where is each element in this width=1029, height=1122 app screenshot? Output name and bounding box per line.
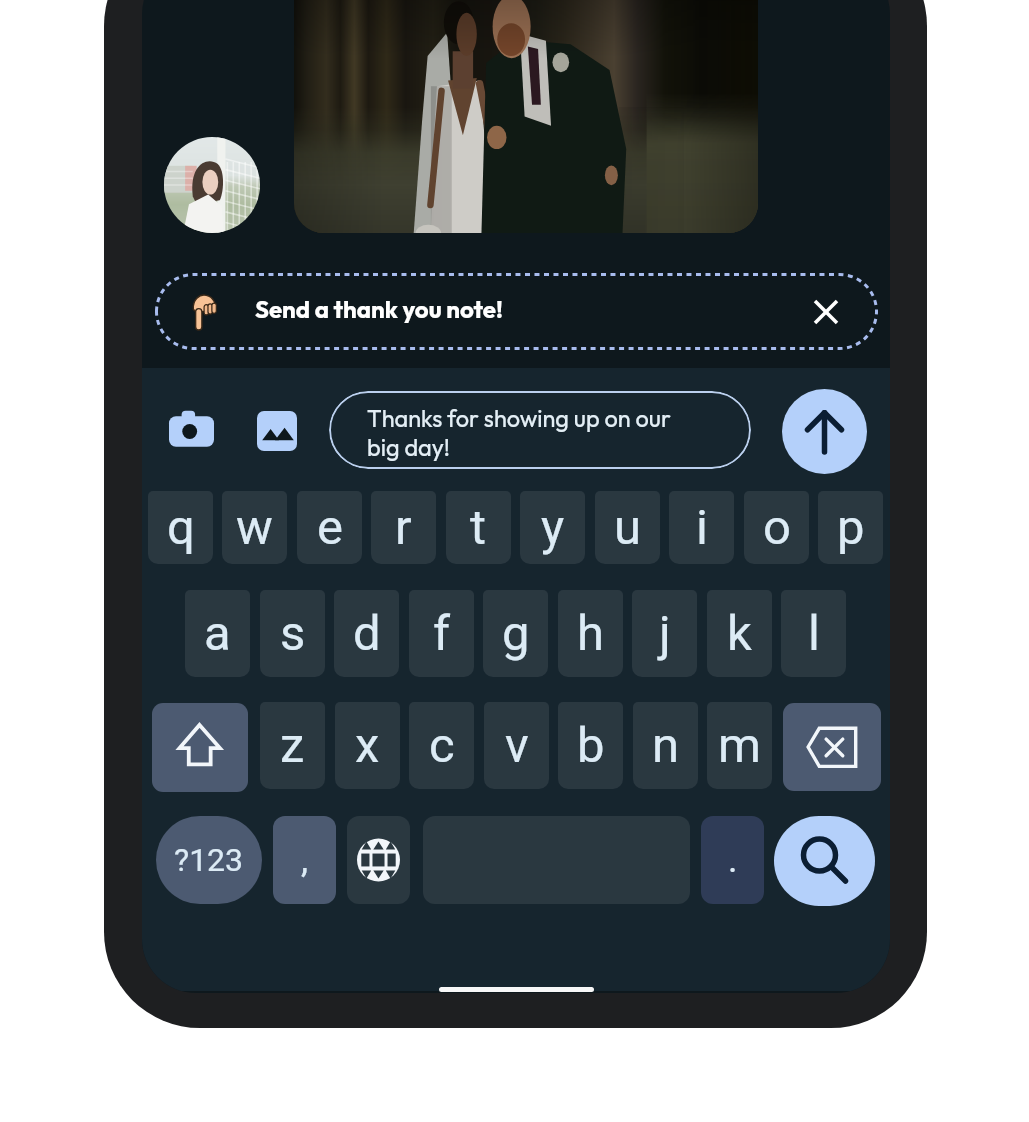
- staticText: p: [837, 499, 865, 556]
- button[interactable]: .: [701, 816, 764, 904]
- button[interactable]: p: [818, 491, 883, 564]
- staticText: k: [727, 605, 752, 662]
- button[interactable]: q: [148, 491, 213, 564]
- staticText: s: [280, 605, 306, 662]
- staticText: o: [763, 499, 791, 556]
- staticText: j: [659, 605, 671, 662]
- button[interactable]: s: [260, 590, 325, 677]
- staticText: e: [317, 499, 343, 556]
- button[interactable]: ?123: [156, 816, 262, 904]
- staticText: v: [505, 717, 529, 774]
- staticText: ,: [301, 839, 309, 881]
- staticText: g: [502, 605, 530, 662]
- staticText: b: [577, 717, 605, 774]
- button[interactable]: t: [446, 491, 511, 564]
- staticText: u: [614, 499, 642, 556]
- staticText: z: [280, 717, 305, 774]
- staticText: ?123: [174, 841, 244, 879]
- staticText: w: [236, 499, 273, 556]
- button[interactable]: v: [484, 702, 549, 789]
- button[interactable]: m: [707, 702, 772, 789]
- button[interactable]: g: [483, 590, 548, 677]
- button[interactable]: Camera: [169, 409, 214, 454]
- staticText: f: [433, 605, 451, 662]
- button[interactable]: Language: [347, 816, 410, 904]
- button[interactable]: l: [781, 590, 846, 677]
- button[interactable]: x: [335, 702, 400, 789]
- button[interactable]: e: [297, 491, 362, 564]
- staticText: Send a thank you note!: [255, 294, 503, 324]
- button[interactable]: Shift: [152, 703, 248, 792]
- staticText: a: [204, 605, 231, 662]
- button[interactable]: Send: [782, 389, 867, 474]
- button[interactable]: a: [185, 590, 250, 677]
- button[interactable]: k: [707, 590, 772, 677]
- staticText: y: [541, 499, 565, 556]
- button[interactable]: n: [633, 702, 698, 789]
- button[interactable]: r: [371, 491, 436, 564]
- button[interactable]: i: [669, 491, 734, 564]
- button[interactable]: Backspace: [783, 703, 881, 791]
- button[interactable]: u: [595, 491, 660, 564]
- button[interactable]: Dismiss: [808, 294, 844, 330]
- button[interactable]: f: [409, 590, 474, 677]
- staticText: r: [395, 499, 412, 556]
- staticText: c: [429, 717, 455, 774]
- staticText: d: [353, 605, 381, 662]
- staticText: t: [470, 499, 487, 556]
- button[interactable]: Search: [774, 816, 875, 906]
- button[interactable]: w: [222, 491, 287, 564]
- staticText: n: [652, 717, 680, 774]
- button[interactable]: Thanks for showing up on our big day!: [329, 391, 751, 469]
- staticText: h: [577, 605, 604, 662]
- staticText: l: [808, 605, 820, 662]
- button[interactable]: z: [260, 702, 325, 789]
- button[interactable]: d: [334, 590, 399, 677]
- button[interactable]: Gallery: [257, 411, 297, 451]
- staticText: x: [355, 717, 380, 774]
- button[interactable]: ,: [273, 816, 336, 904]
- button[interactable]: c: [409, 702, 474, 789]
- button[interactable]: b: [558, 702, 623, 789]
- button[interactable]: j: [632, 590, 697, 677]
- button[interactable]: y: [520, 491, 585, 564]
- staticText: i: [696, 499, 708, 556]
- staticText: .: [728, 839, 738, 881]
- button[interactable]: Send a thank you note!: [155, 273, 878, 350]
- button[interactable]: o: [744, 491, 809, 564]
- staticText: Thanks for showing up on our big day!: [367, 403, 671, 463]
- staticText: m: [718, 717, 761, 774]
- staticText: q: [167, 499, 195, 556]
- button[interactable]: h: [558, 590, 623, 677]
